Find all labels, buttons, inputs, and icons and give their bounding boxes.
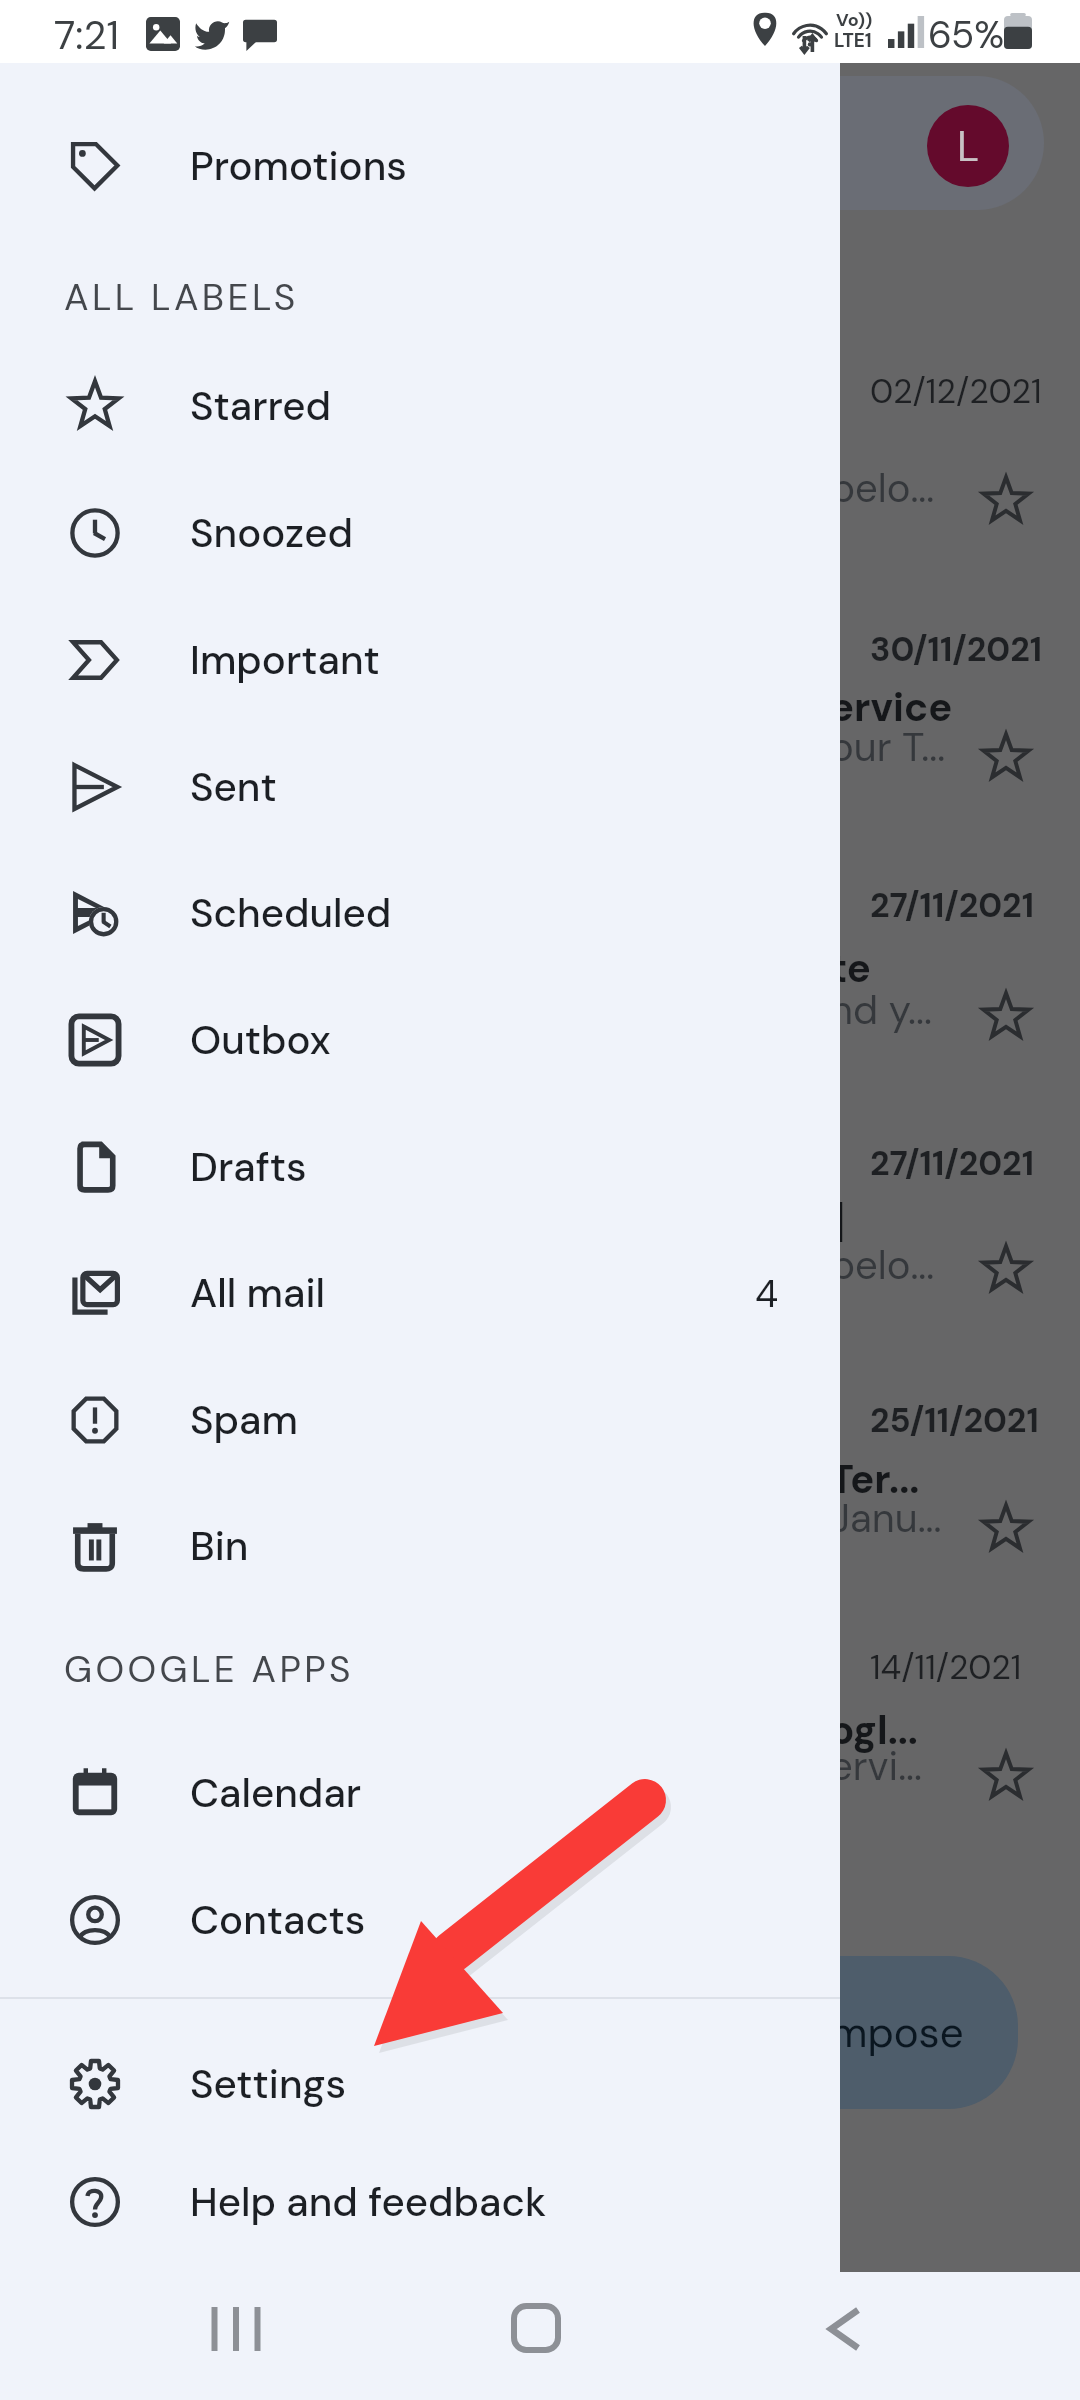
button[interactable]: Calendar bbox=[0, 1730, 840, 1856]
staticText: 30/11/2021 bbox=[870, 627, 1043, 671]
staticText: ] bbox=[830, 1195, 846, 1247]
staticText: ALL LABELS bbox=[64, 273, 299, 321]
staticText: 02/12/2021 bbox=[870, 369, 1042, 413]
button[interactable]: Outbox bbox=[0, 977, 840, 1103]
staticText: 14/11/2021 bbox=[870, 1645, 1022, 1689]
staticText: 4 bbox=[755, 1269, 779, 1318]
staticText: te bbox=[830, 942, 871, 994]
button[interactable]: Home bbox=[460, 2264, 612, 2392]
button[interactable]: Snoozed bbox=[0, 470, 840, 596]
button[interactable]: Bin bbox=[0, 1483, 840, 1609]
staticText: Help and feedback bbox=[190, 2176, 547, 2228]
staticText: Vo)) bbox=[836, 8, 873, 31]
staticText: Promotions bbox=[190, 140, 407, 192]
staticText: 65% bbox=[928, 10, 1005, 59]
button[interactable]: Scheduled bbox=[0, 850, 840, 976]
staticText: ervice bbox=[830, 681, 953, 733]
button[interactable]: Spam bbox=[0, 1357, 840, 1483]
staticText: Ter... bbox=[830, 1453, 920, 1505]
button[interactable]: Back bbox=[768, 2265, 920, 2393]
staticText: LTE1 bbox=[834, 28, 872, 53]
staticText: pelo... bbox=[830, 1239, 935, 1291]
staticText: ervi... bbox=[830, 1740, 922, 1792]
staticText: Drafts bbox=[190, 1141, 307, 1193]
button[interactable]: Important bbox=[0, 597, 840, 723]
staticText: Settings bbox=[190, 2058, 346, 2110]
button[interactable]: Help and feedback bbox=[0, 2139, 840, 2265]
staticText: mpose bbox=[830, 2005, 964, 2060]
button[interactable]: Starred bbox=[0, 343, 840, 469]
button[interactable]: Recent apps bbox=[160, 2265, 312, 2393]
button[interactable]: Drafts bbox=[0, 1104, 840, 1230]
staticText: 25/11/2021 bbox=[870, 1398, 1039, 1442]
staticText: Calendar bbox=[190, 1767, 362, 1819]
staticText: Janu... bbox=[830, 1492, 942, 1544]
button[interactable]: mpose bbox=[600, 1956, 1018, 2109]
staticText: pelo... bbox=[830, 462, 935, 514]
staticText: Bin bbox=[190, 1520, 249, 1572]
staticText: GOOGLE APPS bbox=[64, 1645, 354, 1693]
button[interactable]: Promotions bbox=[0, 103, 840, 229]
staticText: L bbox=[957, 119, 980, 174]
staticText: Contacts bbox=[190, 1894, 366, 1946]
staticText: 27/11/2021 bbox=[870, 883, 1035, 927]
staticText: Starred bbox=[190, 380, 332, 432]
staticText: Scheduled bbox=[190, 887, 392, 939]
button[interactable]: Sent bbox=[0, 724, 840, 850]
staticText: Important bbox=[190, 634, 380, 686]
staticText: All mail bbox=[190, 1267, 325, 1319]
staticText: 27/11/2021 bbox=[870, 1141, 1035, 1185]
staticText: ogl... bbox=[830, 1704, 918, 1756]
staticText: Spam bbox=[190, 1394, 298, 1446]
staticText: our T... bbox=[830, 721, 946, 773]
staticText: Sent bbox=[190, 761, 277, 813]
button[interactable]: All mail bbox=[0, 1230, 840, 1356]
button[interactable]: Contacts bbox=[0, 1857, 840, 1983]
staticText: 7:21 bbox=[54, 9, 119, 61]
staticText: nd y... bbox=[830, 984, 932, 1036]
staticText: Snoozed bbox=[190, 507, 353, 559]
staticText: Outbox bbox=[190, 1014, 331, 1066]
button[interactable]: Settings bbox=[0, 2021, 840, 2147]
